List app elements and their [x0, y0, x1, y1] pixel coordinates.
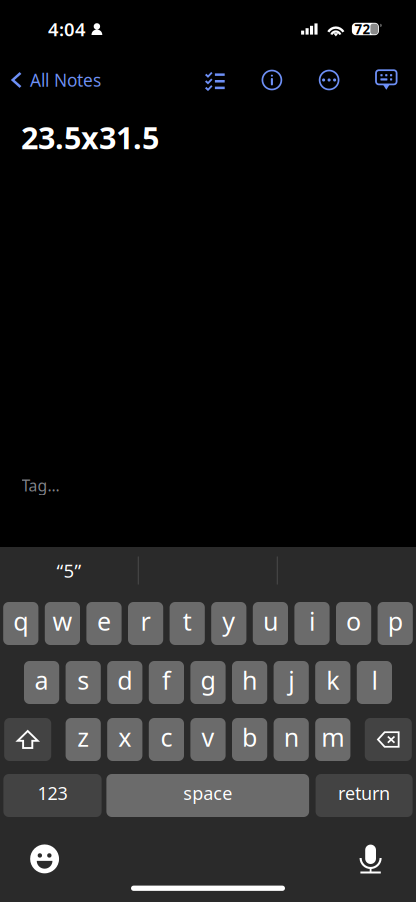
- staticText: u: [263, 604, 278, 638]
- staticText: e: [97, 604, 111, 638]
- staticText: a: [35, 663, 49, 697]
- button[interactable]: q: [3, 602, 38, 645]
- button[interactable]: x: [107, 718, 142, 761]
- staticText: h: [242, 663, 257, 697]
- button[interactable]: k: [315, 661, 350, 704]
- button[interactable]: s: [66, 661, 101, 704]
- button[interactable]: y: [211, 602, 246, 645]
- button[interactable]: o: [336, 602, 371, 645]
- button[interactable]: Shift: [4, 718, 51, 761]
- button[interactable]: p: [378, 602, 413, 645]
- staticText: x: [118, 720, 131, 754]
- button[interactable]: l: [357, 661, 392, 704]
- staticText: All Notes: [30, 68, 101, 92]
- button[interactable]: w: [45, 602, 80, 645]
- button[interactable]: Delete: [365, 718, 412, 761]
- button[interactable]: v: [190, 718, 226, 761]
- button[interactable]: 123: [3, 774, 102, 817]
- staticText: space: [183, 781, 232, 805]
- staticText: w: [52, 604, 72, 638]
- staticText: g: [200, 663, 215, 697]
- button[interactable]: n: [274, 718, 309, 761]
- button[interactable]: Info: [243, 58, 300, 102]
- staticText: f: [162, 663, 171, 697]
- staticText: p: [388, 604, 403, 638]
- button[interactable]: More: [300, 58, 358, 102]
- staticText: v: [201, 720, 214, 754]
- button[interactable]: d: [107, 661, 142, 704]
- staticText: m: [321, 720, 344, 754]
- button[interactable]: m: [315, 718, 350, 761]
- button[interactable]: f: [149, 661, 184, 704]
- button[interactable]: r: [128, 602, 163, 645]
- button[interactable]: b: [232, 718, 267, 761]
- staticText: “5”: [56, 558, 81, 583]
- button[interactable]: c: [149, 718, 184, 761]
- staticText: y: [222, 604, 235, 638]
- button[interactable]: t: [170, 602, 205, 645]
- button[interactable]: i: [294, 602, 330, 645]
- staticText: q: [13, 604, 28, 638]
- staticText: j: [288, 663, 294, 697]
- staticText: 23.5x31.5: [21, 116, 159, 158]
- button[interactable]: a: [24, 661, 59, 704]
- button[interactable]: Dictate: [350, 837, 392, 881]
- staticText: z: [77, 720, 89, 754]
- staticText: return: [338, 781, 390, 805]
- button[interactable]: e: [86, 602, 122, 645]
- staticText: t: [183, 604, 192, 638]
- staticText: Tag...: [21, 475, 59, 496]
- button[interactable]: space: [106, 774, 309, 817]
- button[interactable]: All Notes: [0, 58, 111, 102]
- staticText: r: [141, 604, 151, 638]
- button[interactable]: h: [232, 661, 267, 704]
- staticText: n: [284, 720, 299, 754]
- button[interactable]: Emoji: [24, 837, 66, 881]
- staticText: k: [326, 663, 339, 697]
- staticText: b: [242, 720, 257, 754]
- staticText: o: [346, 604, 361, 638]
- staticText: 123: [37, 781, 67, 805]
- staticText: 4:04: [48, 16, 86, 42]
- staticText: l: [371, 663, 377, 697]
- staticText: c: [160, 720, 172, 754]
- button[interactable]: u: [253, 602, 288, 645]
- button[interactable]: “5”: [0, 547, 138, 594]
- button[interactable]: Checklist: [186, 58, 243, 102]
- staticText: 72: [354, 20, 370, 38]
- staticText: s: [77, 663, 89, 697]
- button[interactable]: g: [190, 661, 226, 704]
- staticText: i: [309, 604, 315, 638]
- staticText: d: [117, 663, 132, 697]
- button[interactable]: Hide Keyboard: [358, 58, 415, 102]
- button[interactable]: z: [66, 718, 101, 761]
- button[interactable]: j: [274, 661, 309, 704]
- button[interactable]: return: [316, 774, 413, 817]
